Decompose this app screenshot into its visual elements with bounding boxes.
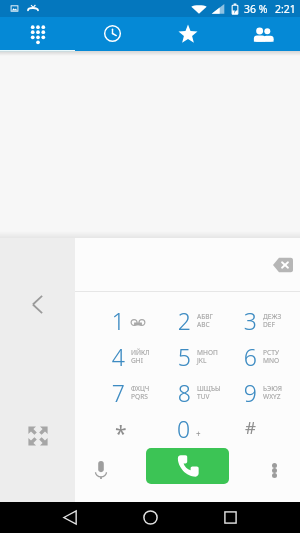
staticText: MNO <box>263 356 280 365</box>
button[interactable]: Recent calls <box>75 17 150 51</box>
staticText: МНОП <box>197 348 218 357</box>
button[interactable]: Key 1 <box>95 301 161 337</box>
staticText: 2:21 <box>275 2 296 16</box>
staticText: 36 % <box>244 2 268 16</box>
button[interactable]: Key 5 <box>161 337 227 373</box>
button[interactable]: Key * <box>95 409 161 445</box>
button[interactable]: Key 4 <box>95 337 161 373</box>
staticText: DEF <box>263 320 275 329</box>
button[interactable]: Key 6 <box>227 337 293 373</box>
staticText: 6 <box>243 341 257 369</box>
button[interactable]: Favorites <box>150 17 225 51</box>
staticText: 3 <box>243 305 257 333</box>
staticText: ШЩЪЫ <box>197 384 221 393</box>
button[interactable]: Home <box>130 502 170 533</box>
staticText: ABC <box>197 320 210 329</box>
staticText: # <box>245 416 256 439</box>
button[interactable]: Call <box>146 448 229 484</box>
staticText: TUV <box>197 392 210 401</box>
button[interactable]: Voice search <box>84 453 118 487</box>
staticText: 5 <box>177 341 191 369</box>
staticText: РСТУ <box>263 348 279 357</box>
button[interactable]: Back <box>50 502 90 533</box>
staticText: WXYZ <box>263 392 281 401</box>
staticText: 4 <box>111 341 125 369</box>
staticText: GHI <box>131 356 143 365</box>
staticText: 8 <box>177 377 191 405</box>
staticText: PQRS <box>131 392 148 401</box>
staticText: 9 <box>243 377 257 405</box>
button[interactable]: Key # <box>227 409 293 445</box>
button[interactable]: Key 9 <box>227 373 293 409</box>
button[interactable]: Recent apps <box>210 502 250 533</box>
button[interactable]: Key 2 <box>161 301 227 337</box>
button[interactable]: Expand <box>22 420 53 451</box>
button[interactable]: Dialpad <box>0 17 75 51</box>
staticText: АБВГ <box>197 312 213 321</box>
button[interactable]: More options <box>257 453 291 487</box>
button[interactable]: Key 0 <box>161 409 227 445</box>
staticText: ИЙКЛ <box>131 348 150 357</box>
staticText: ФХЦЧ <box>131 384 150 393</box>
button[interactable]: Backspace <box>265 248 300 282</box>
staticText: JKL <box>197 356 207 365</box>
button[interactable]: Contacts <box>225 17 300 51</box>
button[interactable]: Key 3 <box>227 301 293 337</box>
button[interactable]: Key 7 <box>95 373 161 409</box>
button[interactable]: Key 8 <box>161 373 227 409</box>
staticText: 0 <box>177 413 191 441</box>
staticText: 7 <box>111 377 125 405</box>
staticText: ДЕЖЗ <box>263 312 282 321</box>
staticText: * <box>115 419 127 447</box>
staticText: ЬЭЮЯ <box>263 384 283 393</box>
staticText: 2 <box>177 305 191 333</box>
staticText: 1 <box>111 305 125 333</box>
staticText: + <box>196 428 201 439</box>
button[interactable]: Collapse dialpad <box>22 289 53 320</box>
